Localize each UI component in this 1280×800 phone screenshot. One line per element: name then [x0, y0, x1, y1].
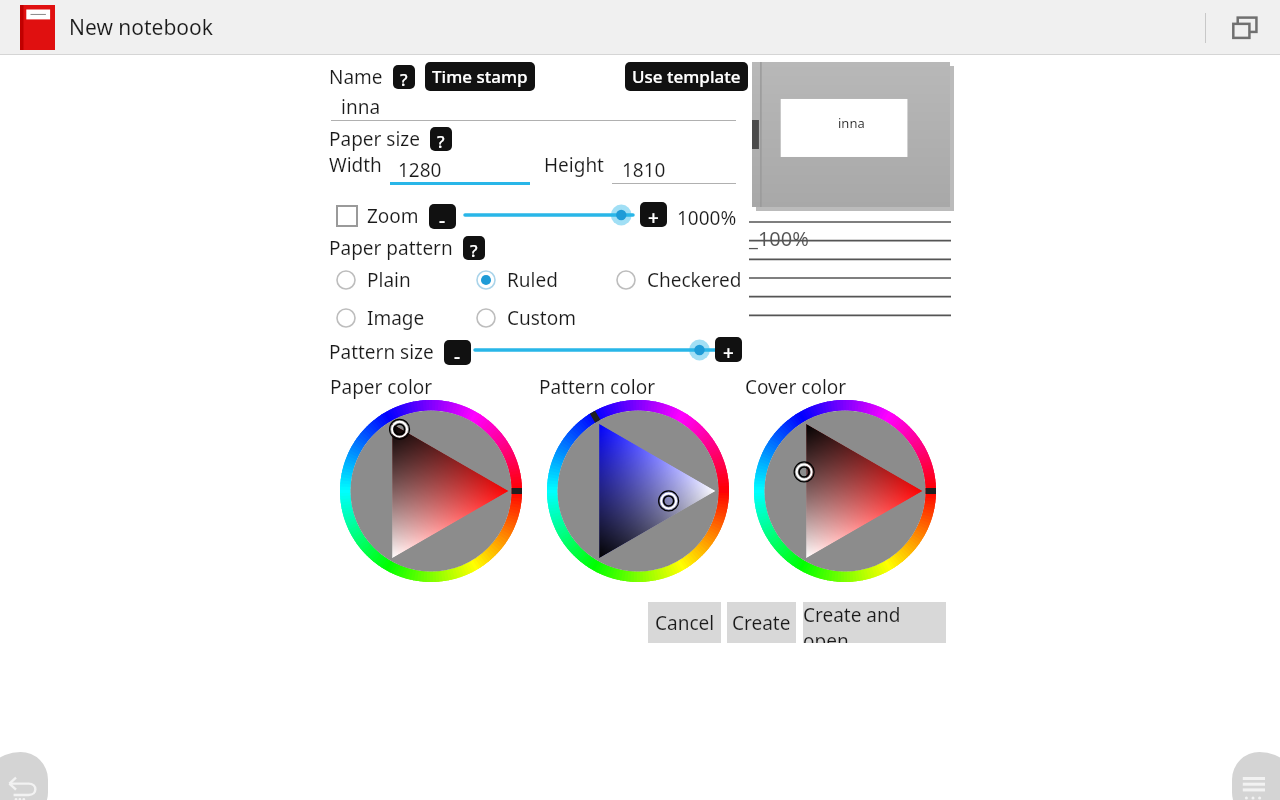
button[interactable]: ? — [430, 127, 452, 151]
staticText: Height — [544, 152, 604, 178]
staticText: Image — [367, 305, 425, 331]
staticText: Time stamp — [432, 65, 528, 88]
staticText: Paper color — [330, 374, 433, 400]
button[interactable]: Custom — [476, 305, 576, 331]
staticText: 1000% — [677, 205, 737, 231]
button[interactable]: Cover color wheel — [754, 400, 936, 582]
button[interactable]: Create — [727, 602, 796, 643]
staticText: inna — [838, 114, 865, 132]
button[interactable]: Time stamp — [425, 62, 535, 91]
staticText: 1280 — [398, 157, 442, 183]
staticText: Paper pattern — [329, 235, 453, 261]
staticText: Paper size — [329, 126, 420, 152]
button[interactable]: Paper color wheel — [340, 400, 522, 582]
staticText: + — [648, 205, 659, 224]
button[interactable]: - — [444, 340, 471, 365]
button[interactable]: Back — [0, 752, 48, 800]
button[interactable]: Pattern color wheel — [547, 400, 729, 582]
staticText: Cover color — [745, 374, 847, 400]
staticText: Create and open — [803, 602, 946, 643]
staticText: 1810 — [622, 157, 666, 183]
staticText: Cancel — [655, 610, 715, 636]
staticText: Pattern color — [539, 374, 655, 400]
staticText: - — [439, 207, 446, 226]
staticText: inna — [341, 94, 381, 120]
button[interactable]: ? — [393, 65, 415, 89]
staticText: Ruled — [507, 267, 558, 293]
staticText: Zoom — [367, 203, 419, 229]
button[interactable]: Checkered — [616, 267, 742, 293]
staticText: + — [723, 340, 734, 359]
button[interactable]: Ruled — [476, 267, 558, 293]
button[interactable]: Cancel — [648, 602, 721, 643]
staticText: - — [454, 343, 461, 362]
staticText: Create — [732, 610, 791, 636]
staticText: ? — [437, 130, 445, 148]
button[interactable]: Menu — [1232, 752, 1280, 800]
button[interactable]: Multi window — [1228, 11, 1262, 45]
staticText: _100% — [749, 225, 809, 252]
staticText: Use template — [632, 65, 741, 88]
button[interactable]: Use template — [625, 62, 748, 91]
button[interactable]: Plain — [336, 267, 411, 293]
staticText: Pattern size — [329, 339, 434, 365]
staticText: ? — [400, 68, 408, 86]
staticText: Checkered — [647, 267, 742, 293]
staticText: New notebook — [69, 13, 213, 42]
staticText: Plain — [367, 267, 411, 293]
button[interactable]: Create and open — [803, 602, 946, 643]
button[interactable]: - — [429, 204, 456, 229]
button[interactable]: + — [640, 202, 667, 227]
button[interactable]: Zoom checkbox — [337, 206, 357, 226]
button[interactable]: ? — [463, 236, 485, 260]
staticText: Custom — [507, 305, 576, 331]
staticText: Width — [329, 152, 382, 178]
staticText: ? — [470, 239, 478, 257]
button[interactable]: + — [715, 337, 742, 362]
staticText: Name — [329, 64, 383, 90]
button[interactable]: Image — [336, 305, 425, 331]
